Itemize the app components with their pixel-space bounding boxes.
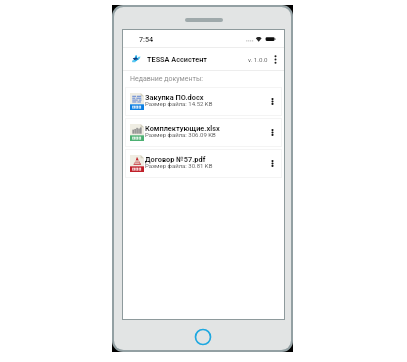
staticText: TESSA Ассистент — [147, 55, 208, 64]
button[interactable]: Закупка ПО.docx — [126, 88, 281, 115]
staticText: Размер файла: 30.81 KB — [145, 162, 213, 169]
button[interactable]: Комплектующие.xlsx — [126, 119, 281, 146]
staticText: v. 1.0.0 — [248, 56, 268, 63]
staticText: Размер файла: 306.09 KB — [145, 131, 216, 138]
button[interactable]: More options — [271, 50, 280, 68]
button[interactable]: Договор №57.pdf — [126, 150, 281, 177]
staticText: Договор №57.pdf — [145, 155, 206, 164]
button[interactable]: Document options — [268, 153, 277, 175]
button[interactable]: Home — [194, 328, 212, 346]
button[interactable]: Document options — [268, 91, 277, 113]
button[interactable]: Document options — [268, 122, 277, 144]
staticText: Недавние документы: — [130, 75, 204, 83]
staticText: Размер файла: 14.52 KB — [145, 100, 213, 107]
staticText: Закупка ПО.docx — [145, 93, 204, 102]
staticText: 7:54 — [139, 35, 154, 43]
staticText: Комплектующие.xlsx — [145, 124, 220, 133]
